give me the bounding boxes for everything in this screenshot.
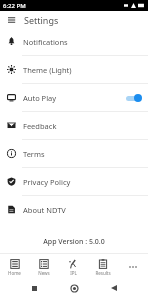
button[interactable]: Theme (Light) [0,56,148,83]
button[interactable]: Home [0,254,29,280]
staticText: App Version : 5.0.0 [43,237,105,247]
button[interactable]: Notifications [0,28,148,55]
button[interactable]: About NDTV [0,196,148,223]
staticText: IPL [70,270,77,276]
button[interactable]: Privacy Policy [0,168,148,195]
button[interactable]: More options [118,254,148,280]
staticText: Privacy Policy [23,177,71,187]
staticText: Results [95,270,111,276]
button[interactable]: Auto Play toggle [125,93,142,103]
staticText: Notifications [23,37,68,47]
button[interactable]: IPL [58,254,88,280]
staticText: News [38,270,50,276]
button[interactable]: Recent apps [14,280,54,296]
button[interactable]: News [29,254,58,280]
staticText: Settings [24,14,59,26]
staticText: Theme (Light) [23,65,72,75]
button[interactable]: Terms [0,140,148,167]
button[interactable]: Open navigation menu [6,14,18,26]
button[interactable]: Feedback [0,112,148,139]
staticText: Terms [23,149,45,159]
staticText: Feedback [23,121,57,131]
button[interactable]: Results [88,254,118,280]
staticText: About NDTV [23,205,66,215]
staticText: 6:22 PM [3,2,26,10]
button[interactable]: Home [54,280,94,296]
staticText: Home [8,270,21,276]
staticText: Auto Play [23,93,57,103]
button[interactable]: Back [94,280,134,296]
button[interactable]: Auto Play [0,84,148,111]
